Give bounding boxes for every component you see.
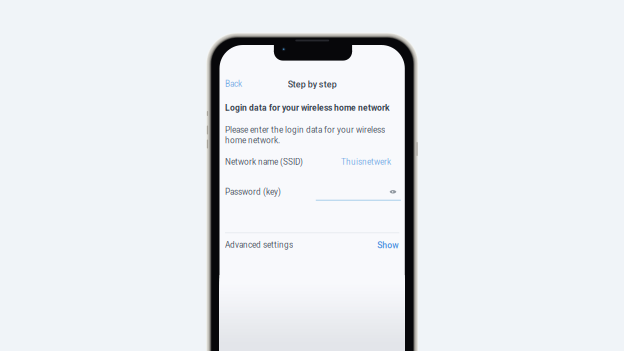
staticText: Back bbox=[225, 79, 242, 89]
button[interactable]: Show password bbox=[387, 186, 398, 197]
staticText: Network name (SSID) bbox=[225, 157, 303, 167]
button[interactable]: Network name (SSID) bbox=[219, 153, 405, 169]
button[interactable]: Advanced settings bbox=[219, 235, 405, 253]
staticText: Login data for your wireless home networ… bbox=[225, 103, 390, 113]
staticText: Show bbox=[377, 240, 398, 250]
staticText: Please enter the login data for your wir… bbox=[225, 125, 385, 135]
button[interactable]: Back bbox=[223, 76, 244, 92]
staticText: Thuisnetwerk bbox=[341, 157, 391, 167]
staticText: Advanced settings bbox=[225, 240, 293, 250]
staticText: Step by step bbox=[288, 79, 337, 90]
staticText: home network. bbox=[225, 136, 280, 145]
staticText: Password (key) bbox=[225, 187, 281, 197]
